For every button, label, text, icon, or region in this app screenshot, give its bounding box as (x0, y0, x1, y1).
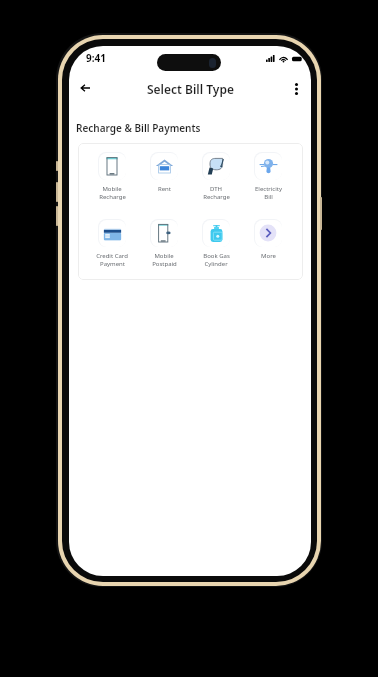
staticText: 9:41 (86, 51, 106, 65)
button[interactable]: More options (284, 77, 308, 101)
staticText: Postpaid (152, 260, 177, 268)
staticText: Credit Card (96, 252, 128, 260)
staticText: Mobile (154, 252, 174, 260)
staticText: Select Bill Type (147, 81, 234, 97)
staticText: Recharge (203, 193, 230, 201)
staticText: Cylinder (204, 260, 228, 268)
button[interactable]: More (244, 219, 292, 260)
staticText: More (261, 252, 276, 260)
button[interactable]: Rent (140, 152, 188, 193)
staticText: DTH (210, 185, 222, 193)
button[interactable]: Mobile (88, 152, 136, 201)
button[interactable]: Mobile (140, 219, 188, 268)
staticText: Recharge & Bill Payments (76, 121, 201, 135)
button[interactable]: Electricity (244, 152, 292, 201)
button[interactable]: Book Gas (192, 219, 240, 268)
staticText: Payment (100, 260, 125, 268)
staticText: Bill (264, 193, 273, 201)
staticText: Book Gas (203, 252, 230, 260)
staticText: Recharge (99, 193, 126, 201)
staticText: Rent (158, 185, 171, 193)
button[interactable]: Back (73, 76, 97, 100)
staticText: Mobile (102, 185, 122, 193)
button[interactable]: Credit Card (88, 219, 136, 268)
staticText: Electricity (255, 185, 282, 193)
button[interactable]: DTH (192, 152, 240, 201)
